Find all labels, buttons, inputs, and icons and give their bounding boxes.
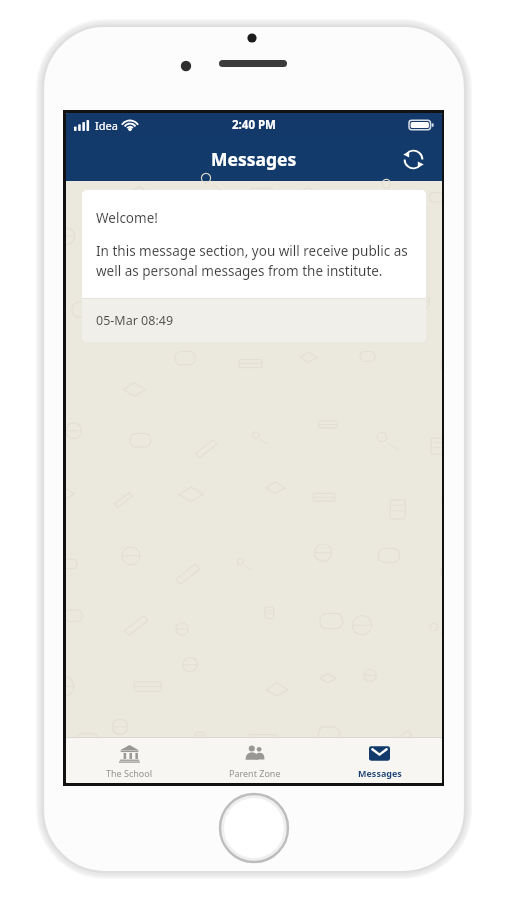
staticText: Idea (95, 118, 118, 133)
staticText: In this message section, you will receiv… (96, 242, 412, 280)
staticText: Welcome! (96, 209, 158, 227)
button[interactable]: Welcome! (82, 190, 426, 342)
button[interactable]: Parent Zone (192, 738, 317, 783)
button[interactable]: Refresh (396, 142, 430, 176)
button[interactable]: Messages (317, 738, 442, 783)
staticText: The School (106, 767, 153, 779)
staticText: 2:40 PM (232, 117, 276, 133)
staticText: 05-Mar 08:49 (96, 312, 174, 329)
staticText: Parent Zone (229, 767, 281, 779)
button[interactable]: The School (66, 738, 192, 783)
staticText: Messages (211, 147, 297, 171)
staticText: Messages (358, 767, 402, 779)
